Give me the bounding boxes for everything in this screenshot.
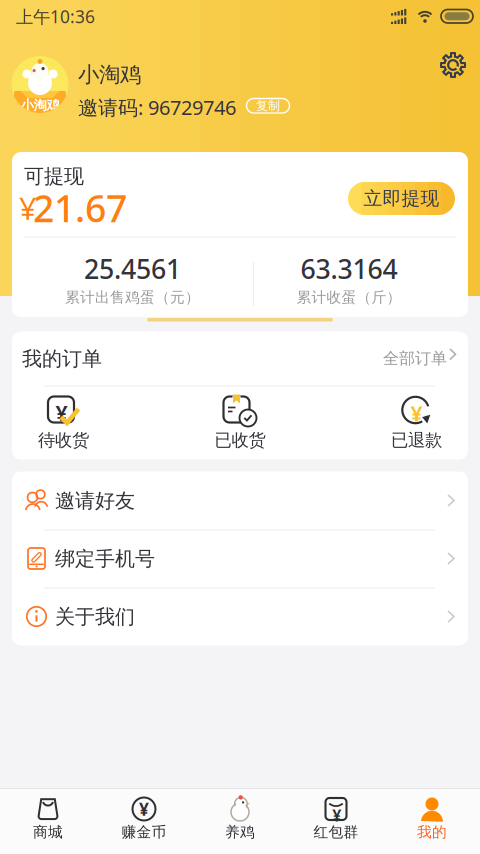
button[interactable]: ¥	[340, 393, 480, 451]
button[interactable]: 复制邀请码	[246, 98, 289, 113]
button[interactable]: 关于我们	[12, 587, 468, 645]
staticText: 我的	[417, 823, 447, 841]
staticText: 63.3164	[300, 251, 397, 286]
button[interactable]: 养鸡	[192, 789, 288, 854]
staticText: 已收货	[214, 429, 265, 451]
staticText: 25.4561	[84, 251, 181, 286]
staticText: ¥	[139, 797, 149, 820]
staticText: 上午10:36	[16, 5, 95, 28]
button[interactable]: ¥	[96, 789, 192, 854]
button[interactable]: 绑定手机号	[12, 529, 468, 587]
button[interactable]: 已收货	[164, 393, 316, 451]
staticText: 红包群	[313, 823, 358, 841]
staticText: 复制	[256, 98, 280, 113]
staticText: 可提现	[24, 164, 84, 189]
staticText: 累计收蛋（斤）	[296, 288, 401, 306]
staticText: 小淘鸡	[20, 97, 59, 113]
button[interactable]: 立即提现	[348, 182, 455, 215]
staticText: 养鸡	[225, 823, 255, 841]
button[interactable]: 我的订单	[12, 331, 468, 385]
staticText: 全部订单	[383, 348, 447, 368]
staticText: ¥	[19, 187, 37, 228]
button[interactable]: 设置	[439, 51, 467, 79]
staticText: 立即提现	[363, 187, 439, 210]
staticText: 小淘鸡	[78, 61, 141, 88]
button[interactable]: 邀请好友	[12, 471, 468, 529]
staticText: 累计出售鸡蛋（元）	[65, 288, 200, 306]
staticText: 已退款	[391, 429, 442, 451]
staticText: 我的订单	[22, 346, 102, 371]
staticText: 邀请好友	[55, 488, 135, 513]
staticText: ¥	[410, 399, 422, 427]
staticText: 绑定手机号	[55, 546, 155, 571]
staticText: 商城	[33, 823, 63, 841]
button[interactable]: ¥	[0, 393, 139, 451]
staticText: 21.67	[33, 183, 127, 233]
staticText: 赚金币	[121, 823, 166, 841]
staticText: ¥	[332, 805, 341, 826]
staticText: 关于我们	[55, 604, 135, 629]
button[interactable]: ¥	[288, 789, 384, 854]
button[interactable]: 商城	[0, 789, 96, 854]
staticText: ¥	[55, 398, 67, 427]
button[interactable]: 我的	[384, 789, 480, 854]
staticText: 待收货	[38, 429, 89, 451]
staticText: 邀请码: 96729746	[78, 94, 236, 121]
